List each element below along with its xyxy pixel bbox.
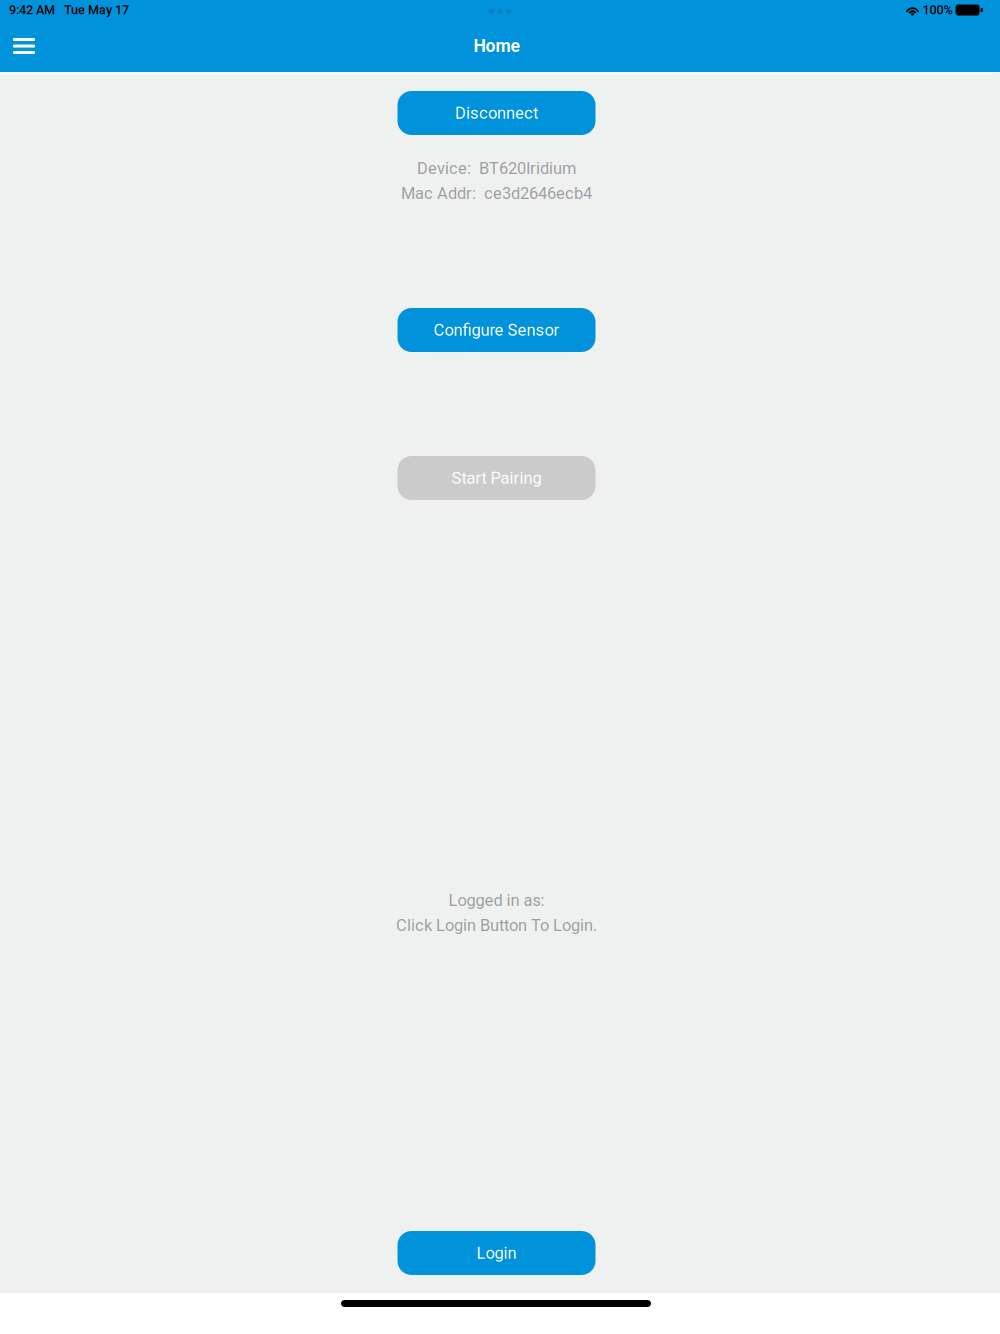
staticText: Disconnect <box>455 103 538 123</box>
button[interactable]: Login <box>397 1231 595 1275</box>
staticText: Home <box>473 36 520 56</box>
staticText: Click Login Button To Login. <box>396 916 597 935</box>
staticText: Configure Sensor <box>433 320 559 340</box>
staticText: Device: BT620Iridium <box>417 159 576 178</box>
staticText: Start Pairing <box>451 468 541 488</box>
staticText: Logged in as: <box>448 891 544 910</box>
staticText: 100% <box>919 3 955 17</box>
button[interactable]: Start Pairing <box>397 456 595 500</box>
staticText: Login <box>476 1243 516 1263</box>
staticText: 9:42 AM Tue May 17 <box>9 3 129 17</box>
staticText: Mac Addr: ce3d2646ecb4 <box>401 184 592 203</box>
button[interactable]: Menu <box>2 24 46 68</box>
button[interactable]: Disconnect <box>397 91 595 135</box>
button[interactable]: Configure Sensor <box>397 308 595 352</box>
